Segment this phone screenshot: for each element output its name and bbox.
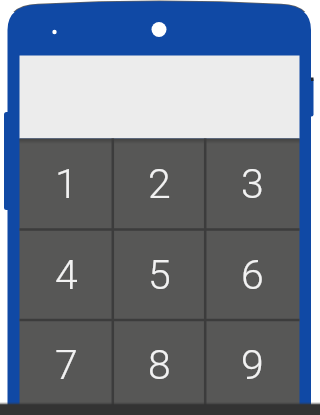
staticText: 8 [148,341,171,389]
button[interactable]: 7 [20,320,113,411]
staticText: 9 [241,341,264,389]
staticText: 1 [55,160,78,208]
staticText: 4 [55,251,78,299]
staticText: 5 [148,251,171,299]
button[interactable]: 1 [20,139,113,230]
button[interactable]: 6 [205,230,299,321]
button[interactable]: 2 [113,139,205,230]
staticText: 7 [55,341,78,389]
button[interactable]: 8 [113,320,205,411]
button[interactable]: 9 [205,320,299,411]
button[interactable]: 3 [205,139,299,230]
button[interactable]: 4 [20,230,113,321]
staticText: 6 [241,251,264,299]
staticText: 3 [241,160,264,208]
staticText: 2 [148,160,171,208]
button[interactable]: 5 [113,230,205,321]
